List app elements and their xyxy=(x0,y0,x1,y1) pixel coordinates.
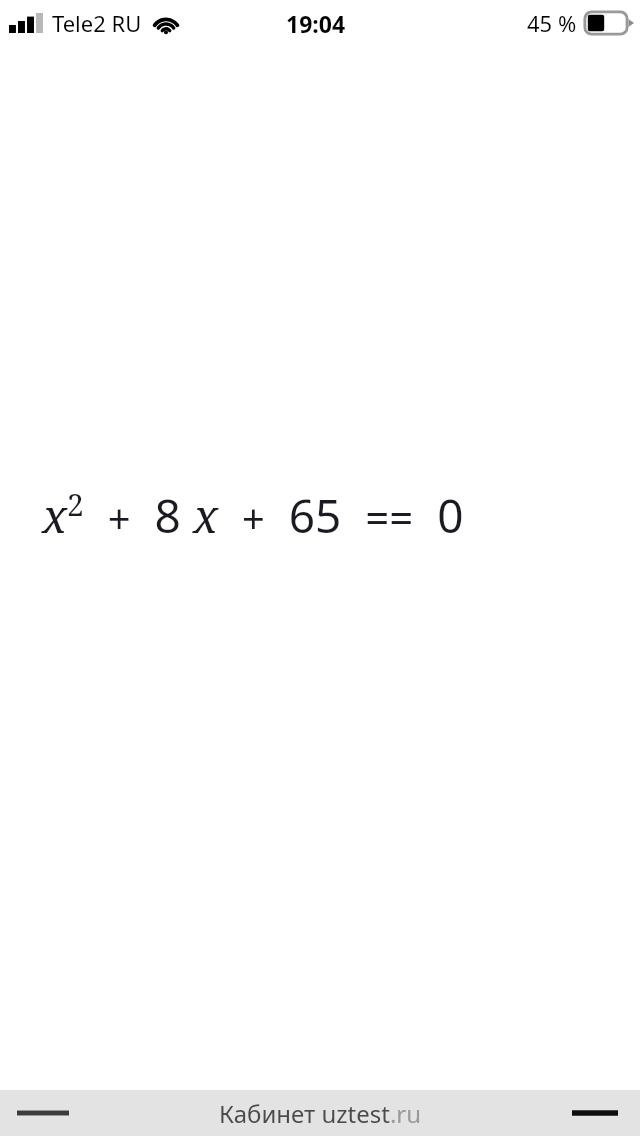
button[interactable]: Кабинет uztest.ru xyxy=(219,1097,422,1130)
button[interactable]: Previous page xyxy=(10,1100,76,1126)
button[interactable]: Next page xyxy=(564,1100,626,1126)
staticText: Tele2 RU xyxy=(52,8,142,38)
staticText: 45 % xyxy=(527,8,577,38)
staticText: x2 + 8 x + 65 == 0 xyxy=(42,484,464,547)
staticText: Кабинет uztest.ru xyxy=(219,1097,422,1130)
staticText: 19:04 xyxy=(286,8,346,39)
